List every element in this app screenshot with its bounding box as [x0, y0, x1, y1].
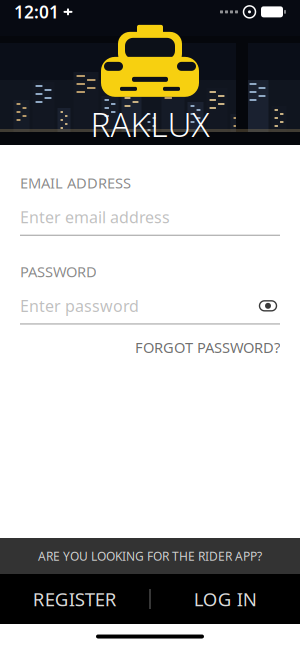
staticText: FORGOT PASSWORD?: [135, 337, 280, 357]
staticText: RAKLUX: [90, 102, 209, 146]
staticText: REGISTER: [33, 587, 117, 611]
staticText: Enter password: [20, 295, 139, 316]
staticText: Enter email address: [20, 206, 170, 228]
staticText: LOG IN: [194, 587, 257, 611]
staticText: ARE YOU LOOKING FOR THE RIDER APP?: [38, 548, 262, 564]
button[interactable]: LOG IN: [150, 574, 300, 624]
staticText: EMAIL ADDRESS: [20, 173, 131, 192]
button[interactable]: REGISTER: [0, 574, 149, 624]
button[interactable]: Show password: [256, 296, 280, 316]
button[interactable]: ARE YOU LOOKING FOR THE RIDER APP?: [0, 538, 300, 574]
staticText: 12:01: [14, 0, 59, 23]
staticText: PASSWORD: [20, 262, 97, 281]
button[interactable]: FORGOT PASSWORD?: [135, 337, 280, 357]
